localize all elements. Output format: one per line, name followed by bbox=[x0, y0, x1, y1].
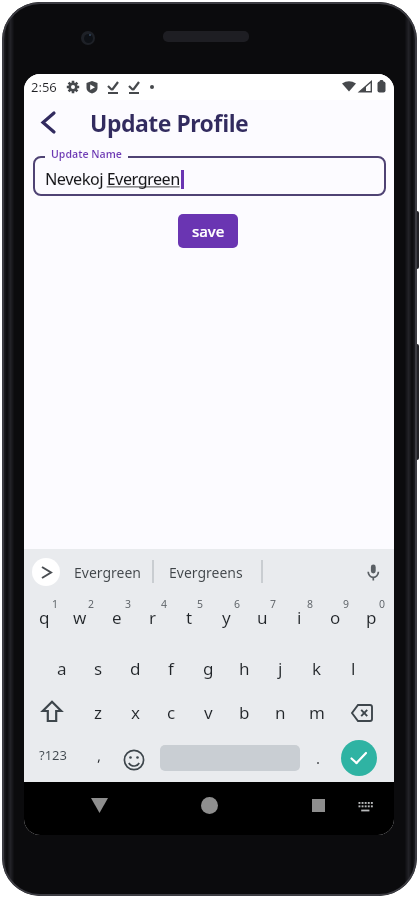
staticText: c bbox=[167, 701, 176, 724]
staticText: 1 bbox=[52, 597, 59, 611]
button[interactable] bbox=[123, 749, 145, 771]
button[interactable] bbox=[341, 740, 377, 776]
staticText: d bbox=[130, 657, 141, 680]
button[interactable]: Evergreens bbox=[162, 557, 249, 588]
button[interactable] bbox=[32, 558, 60, 586]
staticText: Evergreens bbox=[169, 563, 243, 582]
staticText: b bbox=[239, 701, 250, 724]
staticText: , bbox=[97, 745, 102, 765]
staticText: q bbox=[39, 606, 50, 629]
button[interactable]: ?123 bbox=[37, 742, 69, 768]
staticText: x bbox=[131, 701, 140, 724]
staticText: 2 bbox=[88, 597, 95, 611]
button[interactable] bbox=[367, 564, 379, 582]
staticText: f bbox=[168, 657, 174, 680]
staticText: e bbox=[112, 606, 122, 629]
staticText: Update Name bbox=[51, 147, 122, 161]
staticText: 5 bbox=[197, 597, 204, 611]
button[interactable]: Nevekoj Evergreen bbox=[33, 156, 386, 196]
staticText: r bbox=[149, 606, 157, 629]
staticText: Nevekoj Evergreen bbox=[45, 168, 180, 190]
staticText: h bbox=[239, 657, 250, 680]
staticText: t bbox=[186, 606, 193, 629]
staticText: 6 bbox=[234, 597, 241, 611]
staticText: m bbox=[309, 701, 325, 724]
staticText: save bbox=[192, 221, 225, 241]
staticText: n bbox=[275, 701, 286, 724]
staticText: 7 bbox=[270, 597, 277, 611]
staticText: a bbox=[57, 657, 67, 680]
staticText: u bbox=[257, 606, 268, 629]
button[interactable] bbox=[351, 704, 373, 722]
staticText: o bbox=[330, 606, 341, 629]
staticText: i bbox=[297, 606, 302, 629]
button[interactable] bbox=[358, 802, 373, 812]
button[interactable]: save bbox=[178, 214, 238, 248]
button[interactable] bbox=[201, 797, 218, 814]
staticText: y bbox=[222, 606, 231, 629]
button[interactable]: Evergreen bbox=[67, 557, 147, 588]
staticText: v bbox=[204, 701, 213, 724]
staticText: . bbox=[316, 748, 321, 768]
staticText: z bbox=[94, 701, 102, 724]
button[interactable] bbox=[43, 113, 54, 132]
staticText: 8 bbox=[307, 597, 314, 611]
staticText: 3 bbox=[125, 597, 132, 611]
staticText: g bbox=[203, 657, 214, 680]
staticText: Evergreen bbox=[74, 563, 141, 582]
staticText: 0 bbox=[379, 597, 386, 611]
staticText: p bbox=[366, 606, 377, 629]
staticText: 9 bbox=[343, 597, 350, 611]
button[interactable] bbox=[42, 701, 62, 722]
staticText: k bbox=[312, 657, 322, 680]
staticText: Update Profile bbox=[90, 107, 249, 138]
staticText: 2:56 bbox=[31, 78, 57, 96]
staticText: w bbox=[73, 606, 87, 629]
staticText: s bbox=[94, 657, 103, 680]
button[interactable] bbox=[91, 798, 108, 813]
staticText: j bbox=[278, 657, 283, 680]
staticText: ?123 bbox=[39, 746, 67, 764]
staticText: 4 bbox=[161, 597, 168, 611]
staticText: l bbox=[351, 657, 356, 680]
